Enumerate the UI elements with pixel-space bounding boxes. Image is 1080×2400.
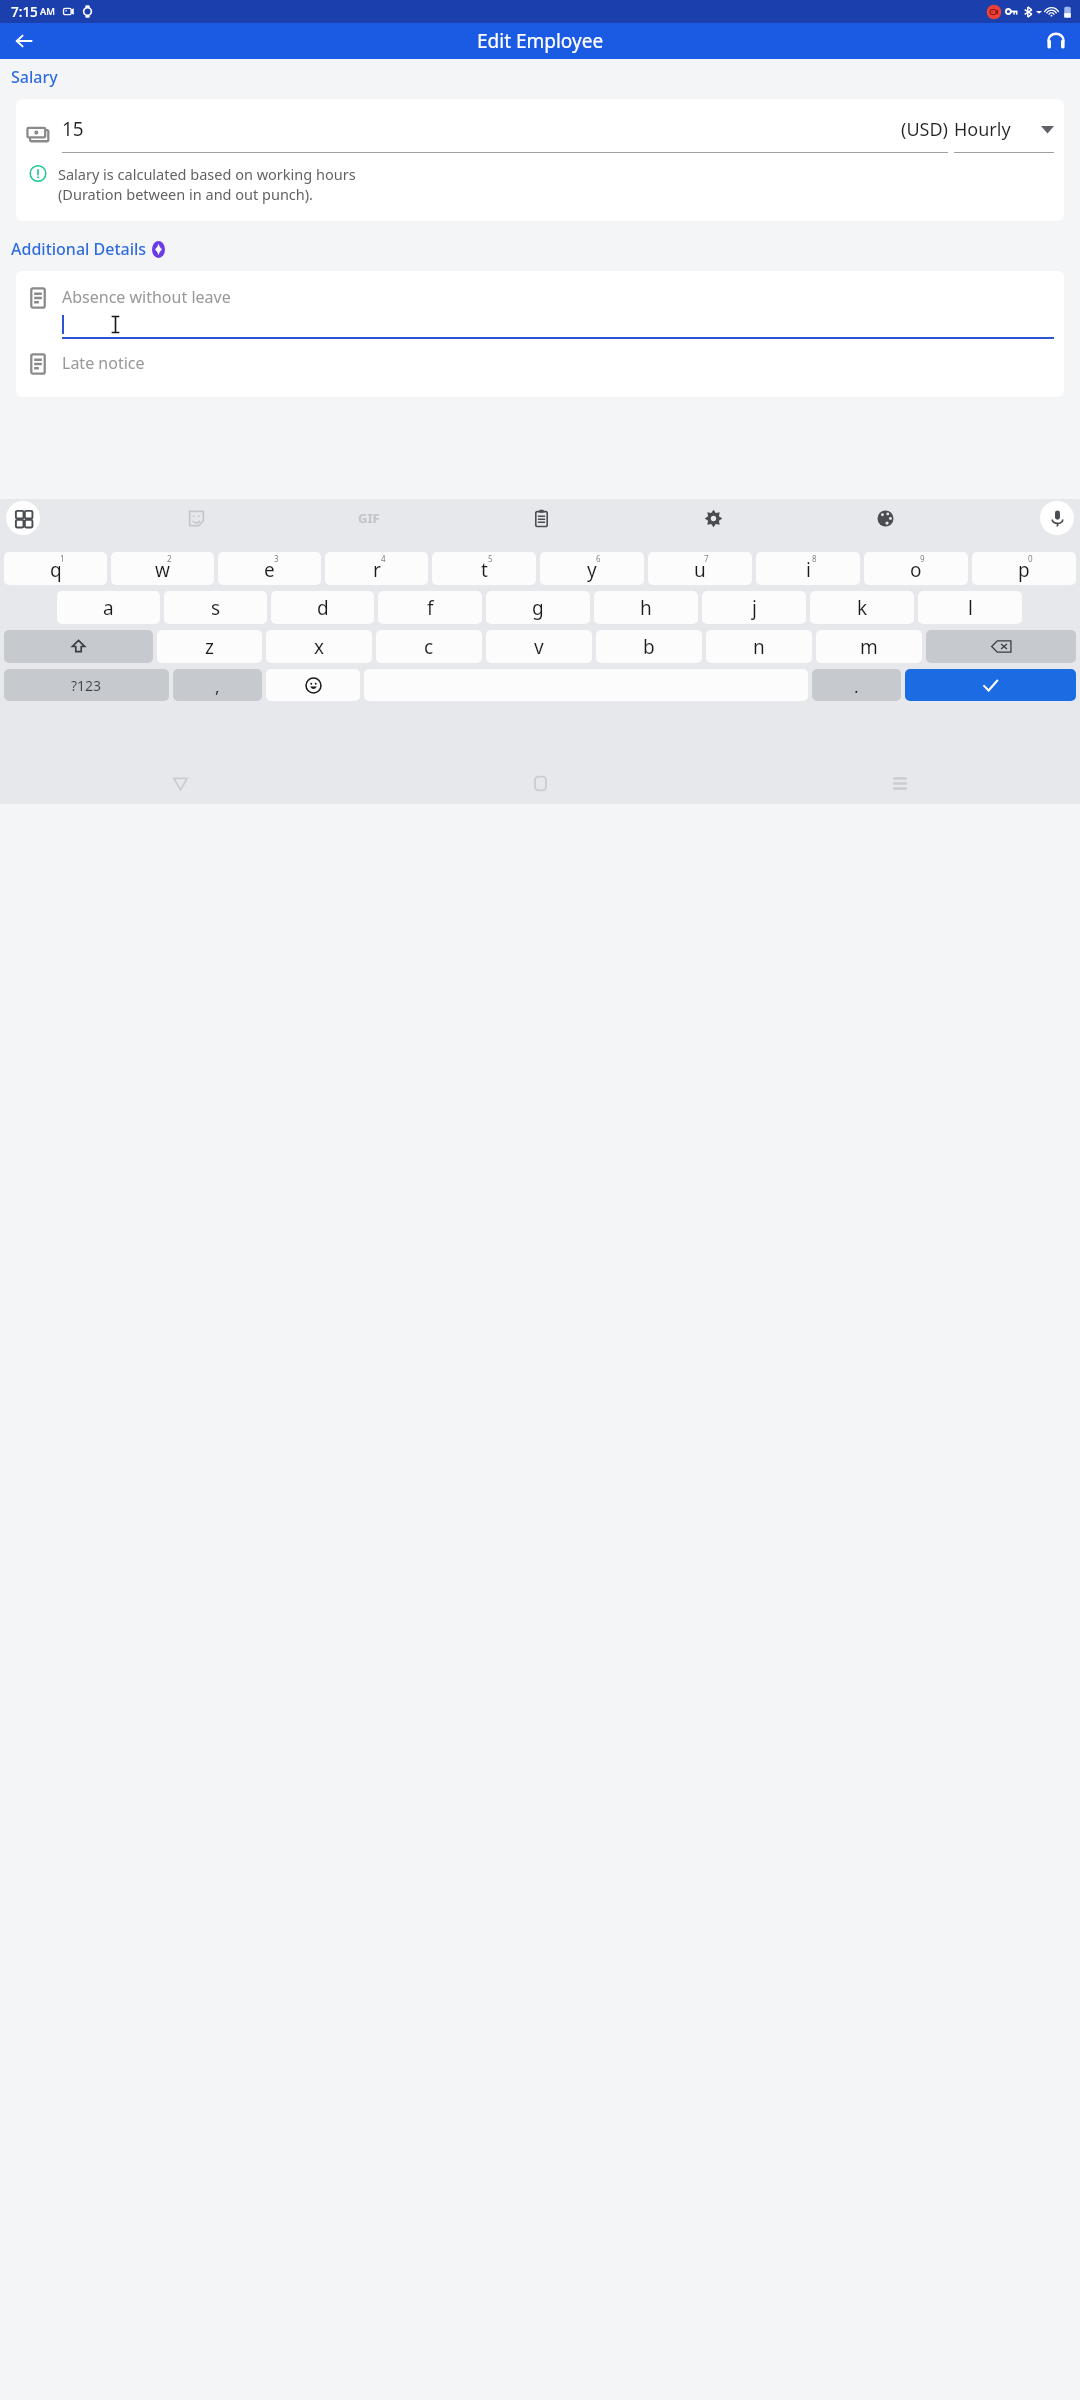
staticText: Edit Employee xyxy=(477,28,604,54)
button[interactable]: Clipboard grid xyxy=(6,501,40,535)
button[interactable]: 1 xyxy=(4,552,107,585)
staticText: y xyxy=(587,557,597,583)
staticText: j xyxy=(752,595,757,621)
button[interactable]: Emoji xyxy=(266,669,360,701)
staticText: . xyxy=(854,675,859,698)
staticText: GIF xyxy=(358,509,380,527)
staticText: l xyxy=(968,595,973,621)
staticText: Late notice xyxy=(62,352,145,374)
button[interactable]: Settings xyxy=(696,501,730,535)
button[interactable]: Enter xyxy=(905,669,1076,701)
button[interactable]: Period xyxy=(812,669,901,701)
staticText: Absence without leave xyxy=(62,286,231,308)
button[interactable]: b xyxy=(596,630,702,663)
staticText: z xyxy=(205,634,214,660)
staticText: Salary is calculated based on working ho… xyxy=(58,164,356,204)
button[interactable]: f xyxy=(378,591,482,624)
staticText: 5 xyxy=(488,553,493,564)
staticText: c xyxy=(424,634,434,660)
staticText: d xyxy=(317,595,329,621)
button[interactable]: x xyxy=(266,630,372,663)
button[interactable]: j xyxy=(702,591,806,624)
button[interactable]: Themes xyxy=(868,501,902,535)
staticText: g xyxy=(532,595,544,621)
staticText: q xyxy=(50,557,62,583)
staticText: k xyxy=(857,595,868,621)
staticText: i xyxy=(806,557,811,583)
button[interactable]: 0 xyxy=(972,552,1076,585)
button[interactable]: GIF xyxy=(352,503,386,533)
staticText: n xyxy=(753,634,765,660)
button[interactable]: 4 xyxy=(325,552,428,585)
button[interactable]: Stickers xyxy=(179,501,213,535)
button[interactable]: Late notice xyxy=(26,352,1054,397)
staticText: ?123 xyxy=(71,676,102,695)
button[interactable]: c xyxy=(376,630,482,663)
staticText: x xyxy=(314,634,325,660)
staticText: o xyxy=(910,557,922,583)
staticText: h xyxy=(640,595,652,621)
staticText: 2 xyxy=(167,553,172,564)
button[interactable]: l xyxy=(918,591,1022,624)
staticText: , xyxy=(215,675,220,698)
button[interactable]: ?123 xyxy=(4,669,169,701)
button[interactable]: 8 xyxy=(756,552,860,585)
staticText: 8 xyxy=(812,553,817,564)
staticText: p xyxy=(1018,557,1030,583)
button[interactable]: h xyxy=(594,591,698,624)
button[interactable]: Absence without leave xyxy=(26,286,1054,339)
staticText: 0 xyxy=(1028,553,1033,564)
staticText: 9 xyxy=(920,553,925,564)
staticText: a xyxy=(103,595,114,621)
button[interactable]: Clipboard xyxy=(524,501,558,535)
staticText: t xyxy=(481,557,488,583)
button[interactable]: Shift xyxy=(4,630,153,663)
staticText: e xyxy=(264,557,275,583)
staticText: (USD) xyxy=(901,117,948,142)
button[interactable]: Voice input xyxy=(1040,501,1074,535)
button[interactable]: 9 xyxy=(864,552,968,585)
button[interactable]: a xyxy=(57,591,160,624)
staticText: 6 xyxy=(596,553,601,564)
button[interactable]: n xyxy=(706,630,812,663)
button[interactable]: 6 xyxy=(540,552,644,585)
button[interactable]: k xyxy=(810,591,914,624)
staticText: 15 xyxy=(62,116,84,142)
button[interactable]: m xyxy=(816,630,922,663)
button[interactable]: 5 xyxy=(432,552,536,585)
staticText: 7:15 xyxy=(11,3,38,21)
staticText: Additional Details xyxy=(11,238,147,260)
staticText: Hourly xyxy=(954,117,1011,142)
staticText: f xyxy=(427,595,434,621)
staticText: r xyxy=(373,557,381,583)
button[interactable]: d xyxy=(271,591,374,624)
staticText: u xyxy=(694,557,706,583)
staticText: 1 xyxy=(60,553,65,564)
button[interactable]: Support xyxy=(1038,23,1074,59)
staticText: Salary xyxy=(11,66,58,88)
staticText: s xyxy=(211,595,221,621)
staticText: 3 xyxy=(274,553,279,564)
staticText: m xyxy=(860,634,878,660)
button[interactable]: Back xyxy=(6,23,42,59)
button[interactable]: z xyxy=(157,630,262,663)
button[interactable]: 2 xyxy=(111,552,214,585)
button[interactable]: Backspace xyxy=(926,630,1076,663)
button[interactable]: v xyxy=(486,630,592,663)
button[interactable]: 3 xyxy=(218,552,321,585)
staticText: 4 xyxy=(381,553,386,564)
button[interactable]: 7 xyxy=(648,552,752,585)
staticText: v xyxy=(534,634,544,660)
button[interactable]: Comma xyxy=(173,669,262,701)
staticText: 7 xyxy=(704,553,709,564)
staticText: AM xyxy=(40,5,55,18)
button[interactable]: s xyxy=(164,591,267,624)
staticText: w xyxy=(155,557,170,583)
button[interactable]: g xyxy=(486,591,590,624)
staticText: b xyxy=(643,634,655,660)
button[interactable]: Hourly xyxy=(954,117,1054,153)
